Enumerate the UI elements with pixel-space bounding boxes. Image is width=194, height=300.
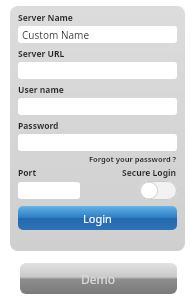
staticText: User name <box>18 84 64 96</box>
staticText: Custom Name <box>22 28 90 42</box>
staticText: Demo <box>81 271 116 287</box>
staticText: Login <box>83 211 112 226</box>
staticText: Secure Login <box>122 167 177 179</box>
button[interactable]: Secure Login toggle <box>139 181 177 200</box>
button[interactable]: Login <box>18 206 177 230</box>
button[interactable]: Forgot your password ? <box>89 154 177 164</box>
staticText: Server URL <box>18 48 65 60</box>
staticText: Port <box>18 167 37 179</box>
button[interactable]: Demo <box>20 263 177 294</box>
staticText: Password <box>18 120 59 132</box>
button[interactable]: Custom Name <box>18 26 177 43</box>
staticText: Forgot your password ? <box>89 154 177 164</box>
staticText: Server Name <box>18 12 73 24</box>
